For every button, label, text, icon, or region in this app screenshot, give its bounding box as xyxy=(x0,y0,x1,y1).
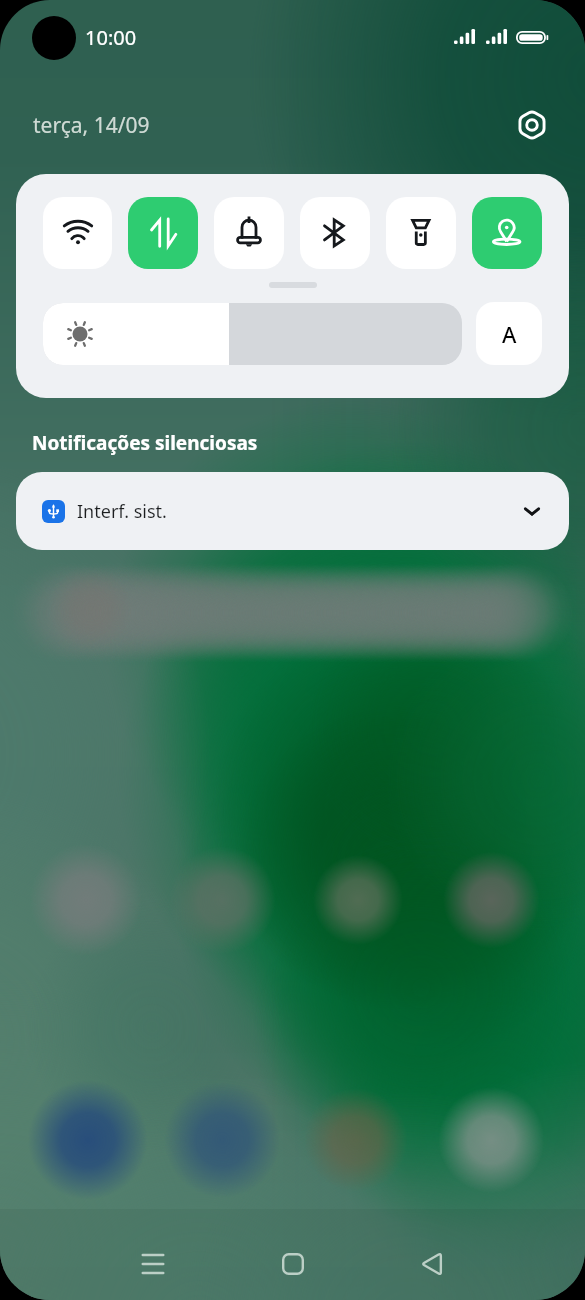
button[interactable] xyxy=(128,197,198,269)
button[interactable] xyxy=(386,197,456,269)
button[interactable] xyxy=(43,303,462,365)
button[interactable]: Recents xyxy=(124,1235,182,1293)
staticText: A xyxy=(502,319,517,349)
staticText: Notificações silenciosas xyxy=(32,430,258,456)
staticText: terça, 14/09 xyxy=(33,111,150,140)
staticText: 10:00 xyxy=(85,24,137,51)
button[interactable] xyxy=(472,197,542,269)
button[interactable]: Back xyxy=(404,1235,462,1293)
staticText: Interf. sist. xyxy=(77,499,167,524)
button[interactable]: Interf. sist. xyxy=(16,472,569,550)
button[interactable]: A xyxy=(476,302,542,365)
button[interactable]: Settings xyxy=(512,105,552,145)
button[interactable]: Home xyxy=(264,1235,322,1293)
button[interactable] xyxy=(300,197,370,269)
button[interactable] xyxy=(214,197,284,269)
button[interactable] xyxy=(43,197,112,269)
